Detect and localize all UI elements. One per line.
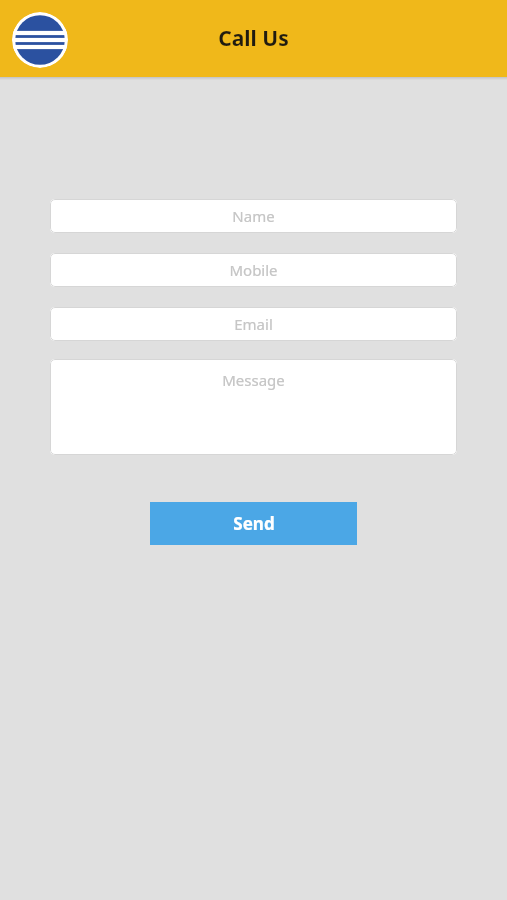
staticText: Mobile: [229, 260, 278, 280]
button[interactable]: Message: [50, 359, 457, 455]
button[interactable]: Open navigation menu: [12, 12, 68, 68]
staticText: Message: [222, 370, 285, 390]
staticText: Email: [234, 314, 273, 334]
button[interactable]: Send: [150, 502, 357, 545]
staticText: Send: [233, 512, 275, 535]
staticText: Name: [232, 206, 275, 226]
button[interactable]: Email: [50, 307, 457, 341]
button[interactable]: Name: [50, 199, 457, 233]
staticText: Call Us: [218, 24, 289, 53]
button[interactable]: Mobile: [50, 253, 457, 287]
